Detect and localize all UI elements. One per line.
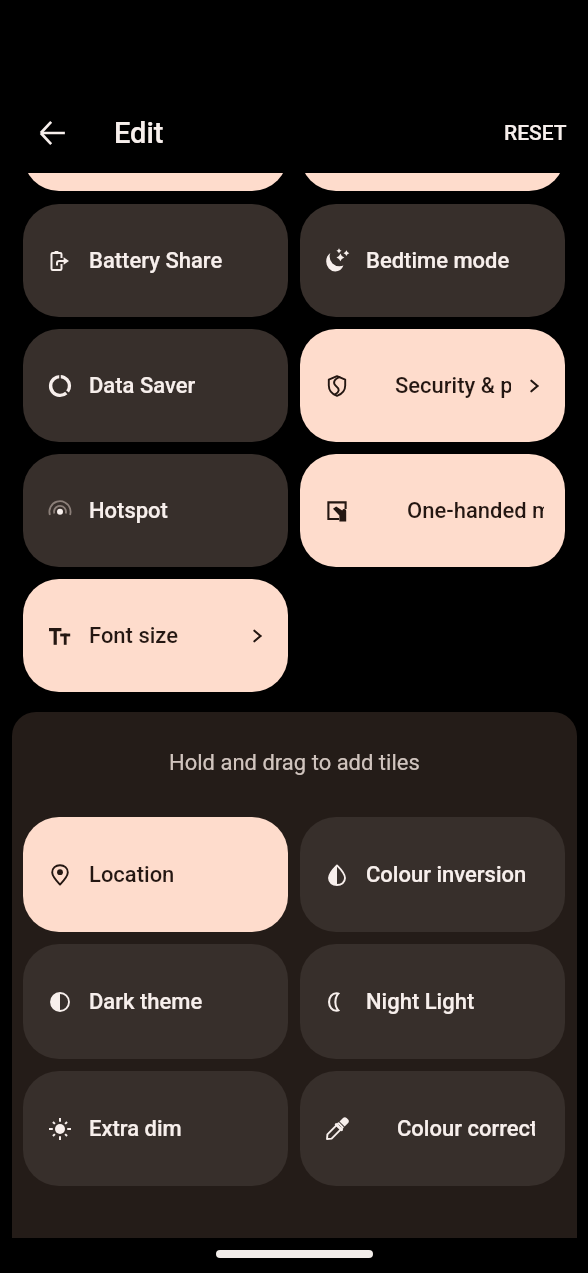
staticText: Font size [89,623,179,649]
staticText: Battery Share [89,248,223,274]
button[interactable]: Location [23,817,288,932]
staticText: Location [89,862,175,888]
staticText: Data Saver [89,373,196,399]
button[interactable]: Dark theme [23,944,288,1059]
staticText: Night Light [366,989,475,1015]
staticText: Hotspot [89,498,168,524]
button[interactable]: Hotspot [23,454,288,567]
staticText: Bedtime mode [366,248,510,274]
button[interactable]: Data Saver [23,329,288,442]
staticText: Colour inversion [366,862,527,888]
button[interactable]: One-handed mode [300,454,565,567]
staticText: RESET [504,121,567,146]
staticText: Dark theme [89,989,203,1015]
staticText: Hold and drag to add tiles [169,750,420,776]
button[interactable]: Back [28,109,76,157]
button[interactable]: Colour inversion [300,817,565,932]
button[interactable]: RESET [492,109,579,157]
button[interactable]: Font size [23,579,288,692]
staticText: One-handed mode [407,498,544,524]
button[interactable]: Colour correction [300,1071,565,1186]
staticText: Edit [114,116,164,150]
button[interactable]: Extra dim [23,1071,288,1186]
button[interactable]: Night Light [300,944,565,1059]
button[interactable]: Battery Share [23,204,288,317]
staticText: Extra dim [89,1116,182,1142]
staticText: Security & privacy [395,373,511,399]
button[interactable]: Security & privacy [300,329,565,442]
button[interactable]: Bedtime mode [300,204,565,317]
staticText: Colour correction [397,1116,535,1142]
